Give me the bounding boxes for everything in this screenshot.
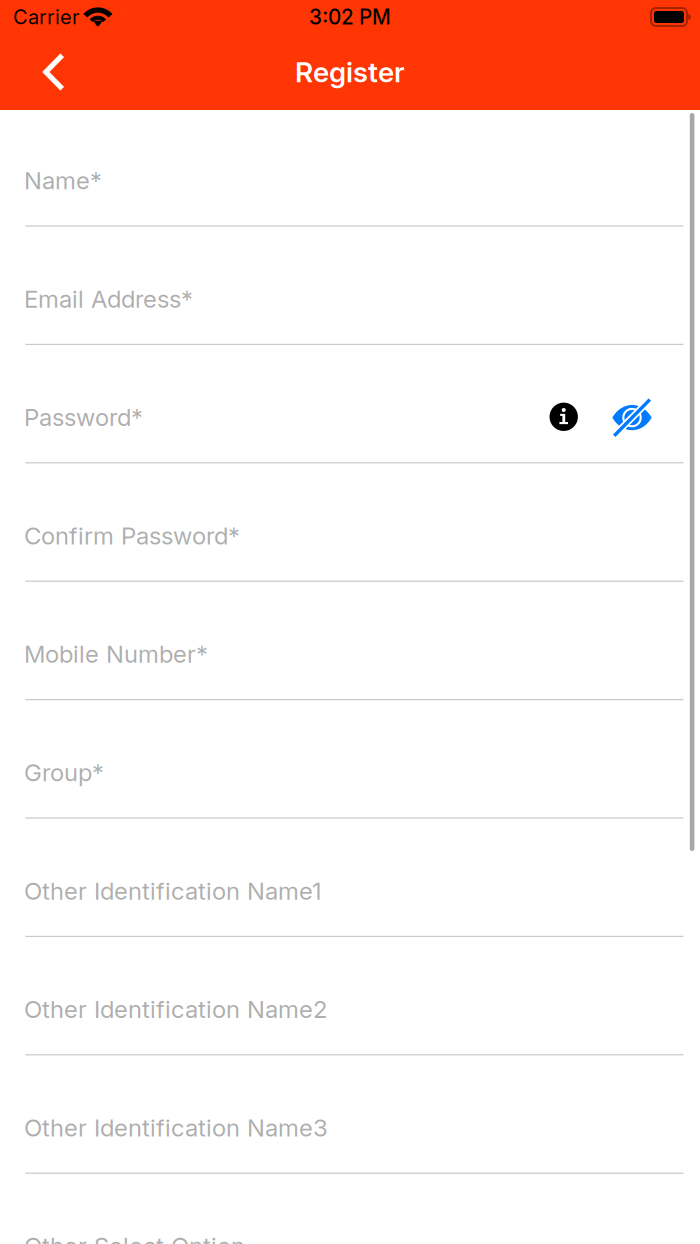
staticText: Group*	[24, 758, 104, 787]
button[interactable]: Other Identification Name3	[0, 1057, 700, 1176]
button[interactable]: Group*	[0, 702, 700, 820]
staticText: 3:02 PM	[309, 4, 391, 29]
button[interactable]: Name*	[0, 110, 700, 228]
button[interactable]: Other Identification Name1	[0, 820, 700, 939]
staticText: Confirm Password*	[24, 521, 240, 550]
button[interactable]: Mobile Number*	[0, 584, 700, 702]
button[interactable]: Password*	[0, 347, 700, 465]
staticText: Name*	[24, 166, 102, 195]
staticText: Password*	[24, 403, 143, 432]
button[interactable]: Confirm Password*	[0, 465, 700, 584]
button[interactable]: Other Identification Name2	[0, 939, 700, 1057]
staticText: Carrier	[13, 5, 79, 29]
button[interactable]: Back	[26, 34, 82, 110]
button[interactable]: Other Select Option	[0, 1176, 700, 1244]
button[interactable]: Show password	[611, 397, 653, 439]
button[interactable]: Password requirements	[549, 403, 578, 431]
staticText: Other Identification Name2	[24, 995, 327, 1024]
staticText: Email Address*	[24, 284, 193, 313]
staticText: Mobile Number*	[24, 640, 208, 669]
staticText: Other Identification Name1	[24, 876, 322, 905]
staticText: Register	[295, 55, 405, 89]
button[interactable]: Email Address*	[0, 228, 700, 347]
staticText: Other Identification Name3	[24, 1113, 328, 1142]
staticText: Other Select Option	[24, 1232, 245, 1244]
